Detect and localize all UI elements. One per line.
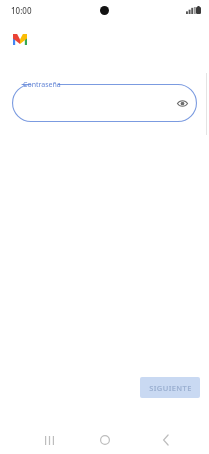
button[interactable]: Atrás <box>155 429 177 451</box>
button[interactable]: Inicio <box>94 429 116 451</box>
staticText: Contraseña <box>23 80 61 90</box>
button[interactable]: Contraseña <box>12 84 197 122</box>
button[interactable]: Mostrar contraseña <box>172 93 192 113</box>
staticText: 10:00 <box>11 5 32 16</box>
staticText: SIGUIENTE <box>149 383 192 393</box>
button[interactable]: Recientes <box>38 429 60 451</box>
button[interactable]: SIGUIENTE <box>140 377 200 398</box>
